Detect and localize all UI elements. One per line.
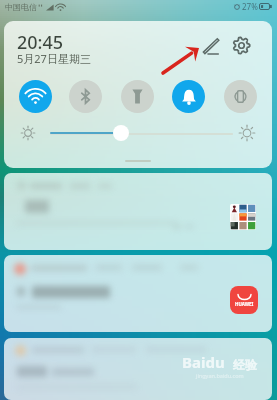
staticText: 中国电信 <box>5 2 37 12</box>
button[interactable]: Quick toggle <box>19 80 52 113</box>
button[interactable]: HUAWEI <box>4 255 272 332</box>
button[interactable]: Quick toggle <box>224 80 257 113</box>
button[interactable]: Quick toggle <box>69 80 102 113</box>
button[interactable]: Quick toggle <box>172 80 205 113</box>
button[interactable]: Edit quick settings <box>198 34 222 58</box>
staticText: Baidu <box>182 352 225 372</box>
button[interactable]: Settings <box>229 33 253 57</box>
staticText: 27% <box>242 1 258 12</box>
staticText: HUAWEI <box>235 301 254 307</box>
button[interactable]: Quick toggle <box>121 80 154 113</box>
button[interactable] <box>4 338 272 400</box>
staticText: 5月27日星期三 <box>17 51 91 66</box>
button[interactable]: Brightness <box>113 125 129 141</box>
button[interactable] <box>4 173 272 250</box>
staticText: jingyan.baidu.com <box>196 372 244 379</box>
staticText: 经验 <box>233 357 257 372</box>
staticText: 20:45 <box>17 30 64 55</box>
